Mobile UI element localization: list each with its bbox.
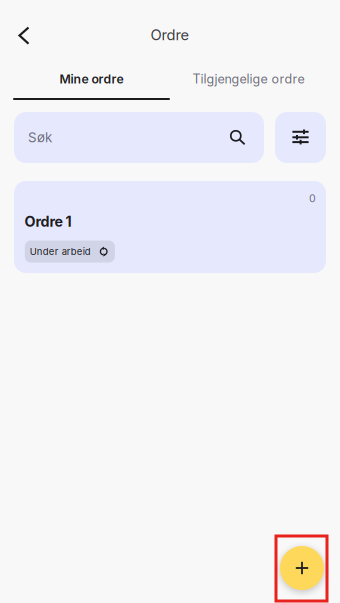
- staticText: 0: [309, 192, 316, 205]
- button[interactable]: Tilgjengelige ordre: [170, 62, 327, 96]
- button[interactable]: Filter: [275, 112, 326, 163]
- button[interactable]: Mine ordre: [13, 62, 170, 96]
- button[interactable]: 0: [14, 181, 326, 273]
- button[interactable]: Back: [2, 14, 46, 58]
- staticText: Mine ordre: [59, 72, 123, 86]
- button[interactable]: Søk: [14, 112, 264, 163]
- staticText: Tilgjengelige ordre: [192, 71, 304, 87]
- staticText: Under arbeid: [30, 246, 91, 257]
- staticText: Ordre 1: [24, 213, 71, 230]
- staticText: Ordre: [150, 26, 189, 44]
- button[interactable]: New order: [280, 546, 324, 590]
- staticText: Søk: [28, 129, 52, 145]
